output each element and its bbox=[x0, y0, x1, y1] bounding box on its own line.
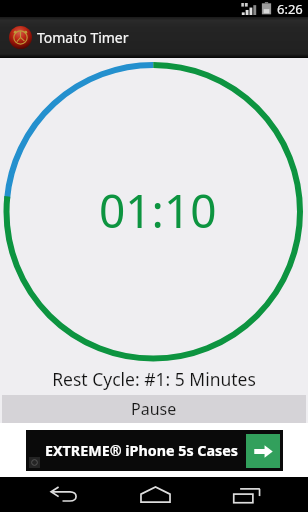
staticText: 6:26 bbox=[277, 0, 303, 17]
staticText: Tomato Timer bbox=[37, 28, 129, 47]
staticText: 01:10 bbox=[99, 179, 217, 242]
button[interactable]: Pause bbox=[2, 395, 306, 423]
button[interactable]: Back bbox=[24, 477, 104, 512]
button[interactable]: Recent apps bbox=[206, 477, 286, 512]
button[interactable]: EXTREME® iPhone 5s Cases bbox=[26, 430, 283, 471]
button[interactable]: Home bbox=[115, 477, 195, 512]
staticText: Pause bbox=[131, 398, 177, 420]
staticText: EXTREME® iPhone 5s Cases bbox=[45, 441, 238, 460]
staticText: Rest Cycle: #1: 5 Minutes bbox=[0, 367, 308, 391]
